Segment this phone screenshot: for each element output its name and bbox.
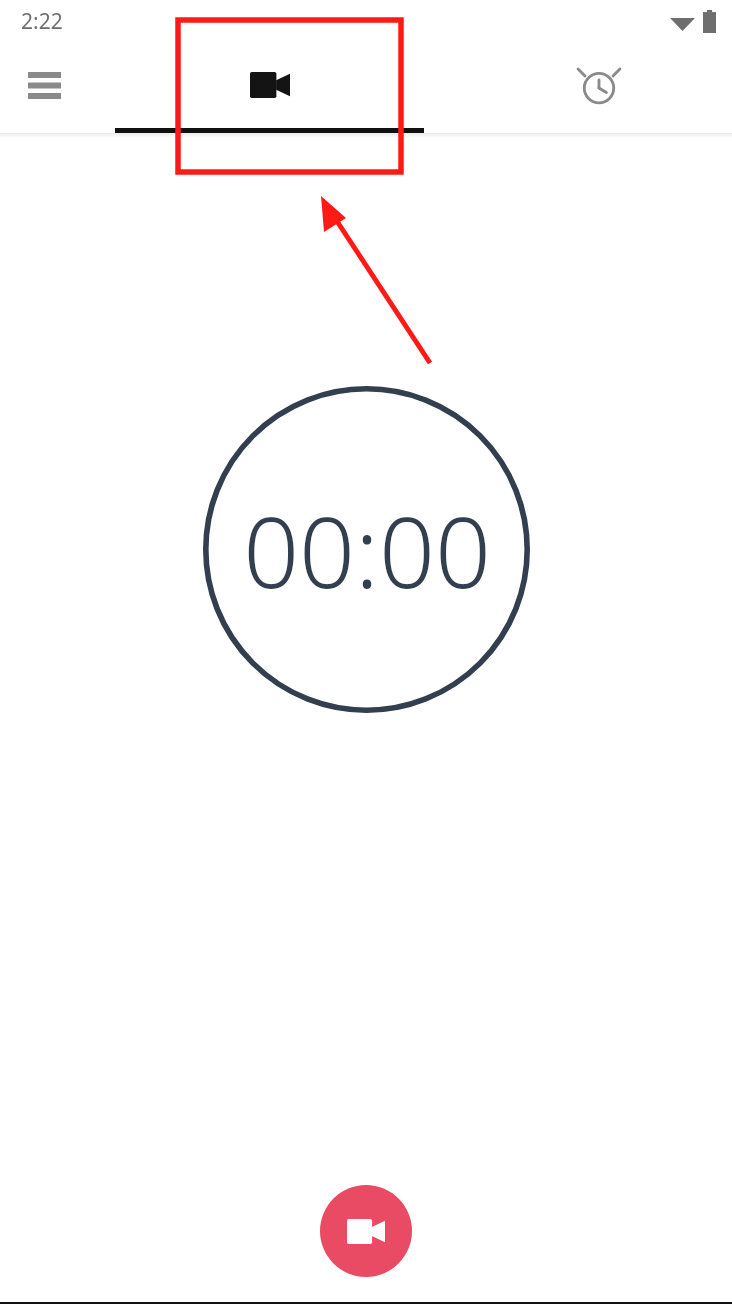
button[interactable]: Video recorder tab	[115, 42, 424, 128]
button[interactable]: Timer 00:00	[203, 386, 530, 713]
staticText: 00:00	[243, 483, 491, 616]
staticText: 2:22	[21, 7, 63, 36]
button[interactable]: Start recording	[320, 1185, 412, 1277]
button[interactable]: Alarms	[568, 54, 630, 116]
button[interactable]: Open navigation drawer	[14, 55, 74, 115]
